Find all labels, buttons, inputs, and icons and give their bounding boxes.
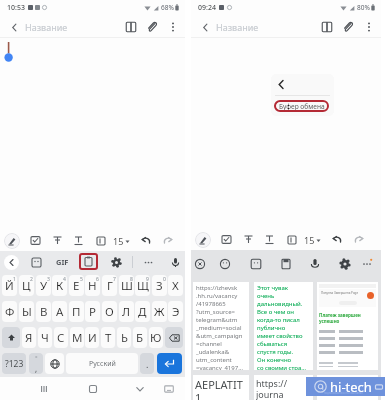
button[interactable]: Redo (161, 234, 174, 247)
button[interactable]: Clipboard (79, 253, 98, 270)
button[interactable]: More (141, 255, 155, 269)
button[interactable]: Home (85, 377, 101, 400)
button[interactable]: Settings (109, 255, 123, 269)
button[interactable]: Attach (341, 20, 355, 34)
button[interactable]: Attach (145, 20, 159, 34)
staticText: Название (216, 21, 259, 33)
button[interactable]: Ж (152, 301, 167, 322)
button[interactable]: Checklist (220, 233, 233, 246)
button[interactable]: Щ (135, 275, 150, 296)
button[interactable]: М (70, 327, 84, 348)
button[interactable]: У (36, 275, 51, 296)
button[interactable]: Tool (337, 250, 353, 277)
button[interactable]: Line spacing (242, 233, 255, 246)
button[interactable]: Tool (217, 250, 233, 277)
button[interactable]: Ц (19, 275, 34, 296)
button[interactable]: Tool (248, 250, 264, 277)
staticText: Русский (89, 359, 116, 369)
button[interactable]: GIF (56, 257, 69, 267)
button[interactable]: Voice input (168, 255, 182, 269)
button[interactable]: Back (6, 20, 20, 34)
button[interactable]: Highlighter (195, 232, 211, 248)
button[interactable]: Ф (2, 301, 17, 322)
button[interactable]: Этот чувак очень дальновидный. Все о чем… (254, 282, 313, 370)
button[interactable] (317, 375, 378, 400)
button[interactable]: С (54, 327, 68, 348)
button[interactable]: Backspace (165, 327, 183, 348)
button[interactable]: Highlighter (4, 233, 20, 249)
button[interactable]: Align (285, 233, 298, 246)
button[interactable]: Р (85, 301, 100, 322)
button[interactable]: Font size (304, 234, 321, 246)
button[interactable]: В (36, 301, 51, 322)
button[interactable]: Э (168, 301, 183, 322)
staticText: 0 (163, 276, 166, 283)
button[interactable]: Ю (149, 327, 163, 348)
button[interactable]: Text style (72, 234, 85, 247)
staticText: 09:24 (198, 3, 216, 13)
button[interactable]: Ь (117, 327, 131, 348)
button[interactable]: Shift (2, 327, 20, 348)
staticText: 1 (13, 276, 16, 283)
staticText: AEPLATIT1 000 (195, 377, 249, 400)
button[interactable]: Hide keyboard (132, 377, 148, 400)
button[interactable]: Т (101, 327, 115, 348)
button[interactable]: О (102, 301, 117, 322)
button[interactable]: Reading mode (124, 20, 138, 34)
button[interactable]: https://izhevsk .hh.ru/vacancy /41978665… (193, 282, 249, 370)
button[interactable]: Space (66, 353, 138, 374)
button[interactable]: Screenshot (317, 282, 378, 370)
button[interactable]: Language (45, 353, 64, 374)
staticText: 6 (96, 276, 99, 283)
button[interactable]: Е (69, 275, 84, 296)
button[interactable]: Redo (352, 233, 365, 246)
button[interactable]: Б (133, 327, 147, 348)
button[interactable]: Tool (359, 250, 375, 277)
button[interactable]: Text style (263, 233, 276, 246)
button[interactable]: Tool (307, 250, 323, 277)
button[interactable]: Буфер обмена (274, 100, 329, 112)
button[interactable]: И (85, 327, 99, 348)
button[interactable]: Recents (36, 377, 52, 400)
button[interactable]: К (52, 275, 67, 296)
button[interactable]: Undo (331, 233, 344, 246)
button[interactable]: Я (22, 327, 36, 348)
button[interactable]: Ч (38, 327, 52, 348)
button[interactable]: Period (140, 353, 154, 374)
button[interactable]: Д (135, 301, 150, 322)
button[interactable]: Н (85, 275, 100, 296)
button[interactable]: Symbols (2, 353, 26, 374)
button[interactable]: Reading mode (320, 20, 334, 34)
button[interactable]: Back (4, 255, 19, 270)
button[interactable]: Back (197, 20, 211, 34)
button[interactable]: П (69, 301, 84, 322)
button[interactable]: Г (102, 275, 117, 296)
staticText: 4 (63, 276, 66, 283)
button[interactable]: Undo (140, 234, 153, 247)
button[interactable]: Align (94, 234, 107, 247)
button[interactable]: Х (168, 275, 183, 296)
button[interactable]: Stickers (29, 255, 43, 269)
button[interactable]: Ш (119, 275, 134, 296)
staticText: О (105, 304, 114, 320)
button[interactable]: Font size (113, 235, 130, 247)
button[interactable]: З (152, 275, 167, 296)
button[interactable]: А (52, 301, 67, 322)
staticText: 68% (161, 3, 174, 12)
button[interactable]: Line spacing (51, 234, 64, 247)
staticText: . (146, 358, 149, 370)
button[interactable]: AEPLATIT1 000 (193, 375, 249, 400)
button[interactable]: Й (2, 275, 17, 296)
button[interactable]: More options (362, 20, 376, 34)
button[interactable]: Tool (278, 250, 294, 277)
button[interactable]: Back (274, 77, 288, 91)
button[interactable]: Checklist (29, 234, 42, 247)
button[interactable]: Enter (157, 353, 182, 374)
button[interactable]: Tool (192, 250, 208, 277)
button[interactable]: Ы (19, 301, 34, 322)
button[interactable]: Comma (29, 353, 43, 374)
button[interactable]: More options (166, 20, 180, 34)
button[interactable]: https://journa .tinkoff.ru (254, 375, 313, 400)
button[interactable]: Л (119, 301, 134, 322)
button[interactable]: Keyboard layout (161, 377, 177, 400)
